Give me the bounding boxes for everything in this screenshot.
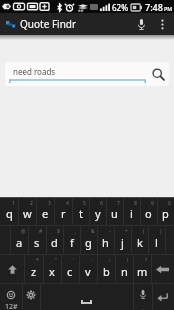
staticText: 3 <box>48 200 51 207</box>
button[interactable]: 1 <box>0 198 18 225</box>
staticText: a <box>16 235 23 250</box>
button[interactable]: 9 <box>140 198 157 225</box>
button[interactable]: Backspace <box>151 255 174 283</box>
button[interactable]: More options <box>154 16 170 32</box>
staticText: x <box>49 264 55 279</box>
button[interactable]: 3 <box>36 198 54 225</box>
button[interactable]: _ <box>63 226 80 254</box>
button[interactable]: : <box>79 255 97 283</box>
button[interactable]: 2 <box>18 198 36 225</box>
staticText: $ <box>57 228 60 235</box>
button[interactable]: Space <box>40 284 133 310</box>
button[interactable]: @ <box>10 226 28 254</box>
staticText: ' <box>73 257 75 264</box>
button[interactable]: Emoji and symbols <box>0 284 22 310</box>
staticText: f <box>70 235 74 250</box>
staticText: PM <box>164 5 173 12</box>
staticText: o <box>145 206 152 221</box>
other: Enter <box>157 292 169 302</box>
other: Voice input <box>133 284 152 310</box>
staticText: l <box>155 235 158 250</box>
staticText: # <box>39 228 43 235</box>
staticText: * <box>36 257 39 264</box>
button[interactable]: & <box>80 226 97 254</box>
staticText: & <box>91 228 95 235</box>
staticText: . <box>142 304 144 310</box>
staticText: 4 <box>66 200 69 207</box>
button[interactable]: 6 <box>89 198 106 225</box>
staticText: q <box>6 206 13 221</box>
staticText: k <box>137 235 143 250</box>
staticText: - <box>109 228 111 235</box>
button[interactable]: 4 <box>54 198 72 225</box>
button[interactable] <box>165 226 174 254</box>
staticText: Quote Findr <box>20 17 77 31</box>
staticText: y <box>95 206 101 221</box>
staticText: need roads <box>13 66 56 77</box>
staticText: p <box>162 206 169 221</box>
button[interactable]: ! <box>115 255 133 283</box>
staticText: ! <box>127 257 129 264</box>
button[interactable]: ' <box>61 255 79 283</box>
button[interactable]: ? <box>133 255 151 283</box>
button[interactable]: - <box>97 226 114 254</box>
button[interactable]: Settings <box>22 284 40 310</box>
staticText: _ <box>74 228 77 235</box>
staticText: 1 <box>12 200 15 207</box>
button[interactable]: * <box>24 255 43 283</box>
staticText: 6 <box>100 200 103 207</box>
staticText: ( <box>143 228 145 235</box>
other: Settings <box>22 284 40 310</box>
button[interactable]: ; <box>97 255 115 283</box>
button[interactable]: Shift <box>0 255 24 283</box>
staticText: b <box>103 264 110 279</box>
staticText: r <box>61 206 66 221</box>
button[interactable]: ( <box>131 226 148 254</box>
button[interactable]: $ <box>46 226 63 254</box>
staticText: ; <box>109 257 111 264</box>
button[interactable]: 5 <box>72 198 89 225</box>
staticText: m <box>137 264 148 279</box>
staticText: s <box>34 235 40 250</box>
staticText: 12# <box>5 302 18 310</box>
button[interactable]: Voice input <box>133 284 152 310</box>
button[interactable]: # <box>28 226 46 254</box>
staticText: ? <box>145 257 148 264</box>
button[interactable]: 0 <box>157 198 174 225</box>
staticText: 0 <box>168 200 171 207</box>
staticText: 5 <box>83 200 86 207</box>
staticText: 7:48 <box>145 1 163 13</box>
staticText: e <box>42 206 49 221</box>
button[interactable]: Search <box>147 62 169 86</box>
button[interactable]: 8 <box>123 198 140 225</box>
staticText: v <box>85 264 91 279</box>
staticText: 7 <box>117 200 120 207</box>
staticText: @ <box>21 228 26 235</box>
staticText: ) <box>160 228 162 235</box>
other: Backspace <box>156 265 169 274</box>
button[interactable]: " <box>43 255 61 283</box>
staticText: g <box>85 235 92 250</box>
other: Space <box>40 284 133 310</box>
staticText: j <box>121 235 124 250</box>
staticText: 8 <box>134 200 137 207</box>
staticText: " <box>55 257 58 264</box>
staticText: d <box>51 235 58 250</box>
button[interactable]: 7 <box>106 198 123 225</box>
button[interactable]: + <box>114 226 131 254</box>
staticText: i <box>130 206 133 221</box>
staticText: u <box>111 206 118 221</box>
staticText: 62% <box>112 2 128 13</box>
staticText: w <box>23 206 32 221</box>
button[interactable]: Voice search <box>132 15 150 33</box>
other: Shift <box>7 264 18 275</box>
button[interactable]: ) <box>148 226 165 254</box>
staticText: z <box>31 264 37 279</box>
staticText: + <box>125 228 128 235</box>
staticText: c <box>67 264 73 279</box>
button[interactable]: Enter <box>152 284 174 310</box>
staticText: t <box>79 206 83 221</box>
staticText: 9 <box>151 200 154 207</box>
